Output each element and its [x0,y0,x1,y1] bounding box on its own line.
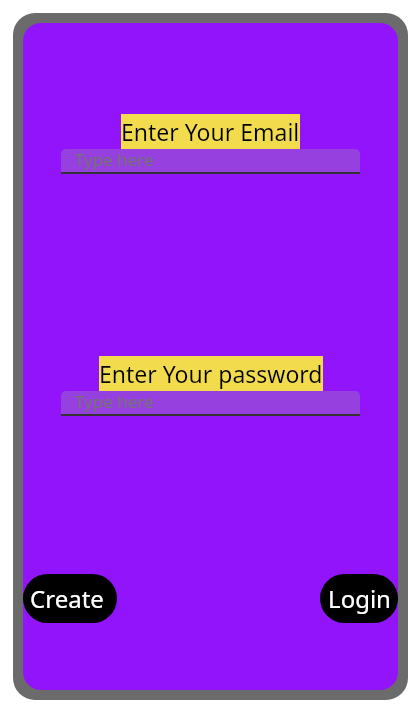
staticText: Type here [75,391,154,413]
staticText: Enter Your Email [121,116,300,147]
staticText: Type here [75,149,154,171]
button[interactable]: Email input [61,149,360,174]
staticText: Create [30,582,104,615]
button[interactable]: Password input [61,391,360,416]
staticText: Login [328,582,391,615]
button[interactable]: Create [23,574,117,623]
staticText: Enter Your password [99,358,323,389]
button[interactable]: Login [320,574,398,623]
